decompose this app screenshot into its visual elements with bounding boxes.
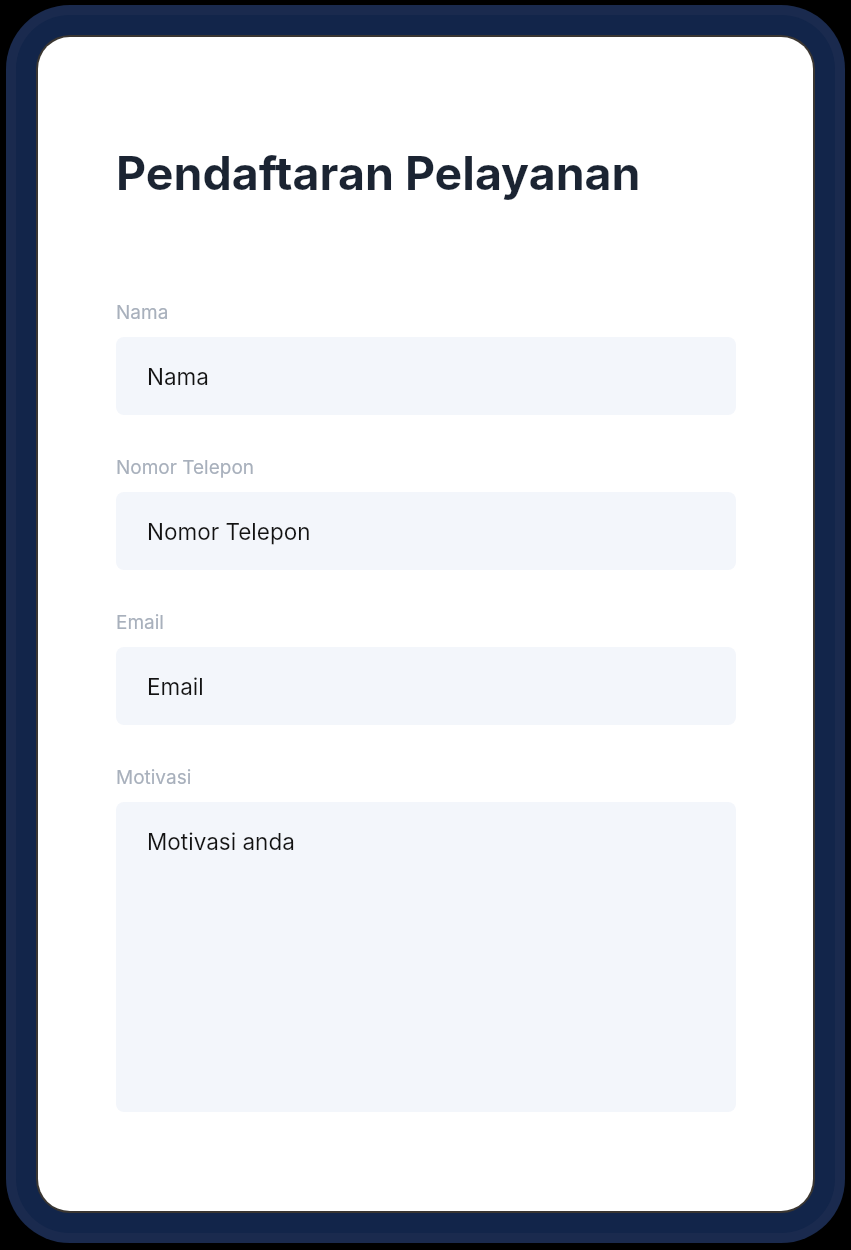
button[interactable]: Email <box>116 647 736 725</box>
staticText: Motivasi <box>116 766 192 789</box>
button[interactable]: Nomor Telepon <box>116 492 736 570</box>
staticText: Nomor Telepon <box>116 456 255 479</box>
staticText: Nama <box>116 301 169 324</box>
staticText: Email <box>147 673 204 700</box>
staticText: Nama <box>147 363 209 390</box>
staticText: Nomor Telepon <box>147 518 311 545</box>
button[interactable]: Motivasi <box>116 802 736 1112</box>
staticText: Pendaftaran Pelayanan <box>116 145 641 201</box>
staticText: Motivasi anda <box>147 828 295 855</box>
button[interactable]: Nama <box>116 337 736 415</box>
staticText: Email <box>116 611 164 634</box>
